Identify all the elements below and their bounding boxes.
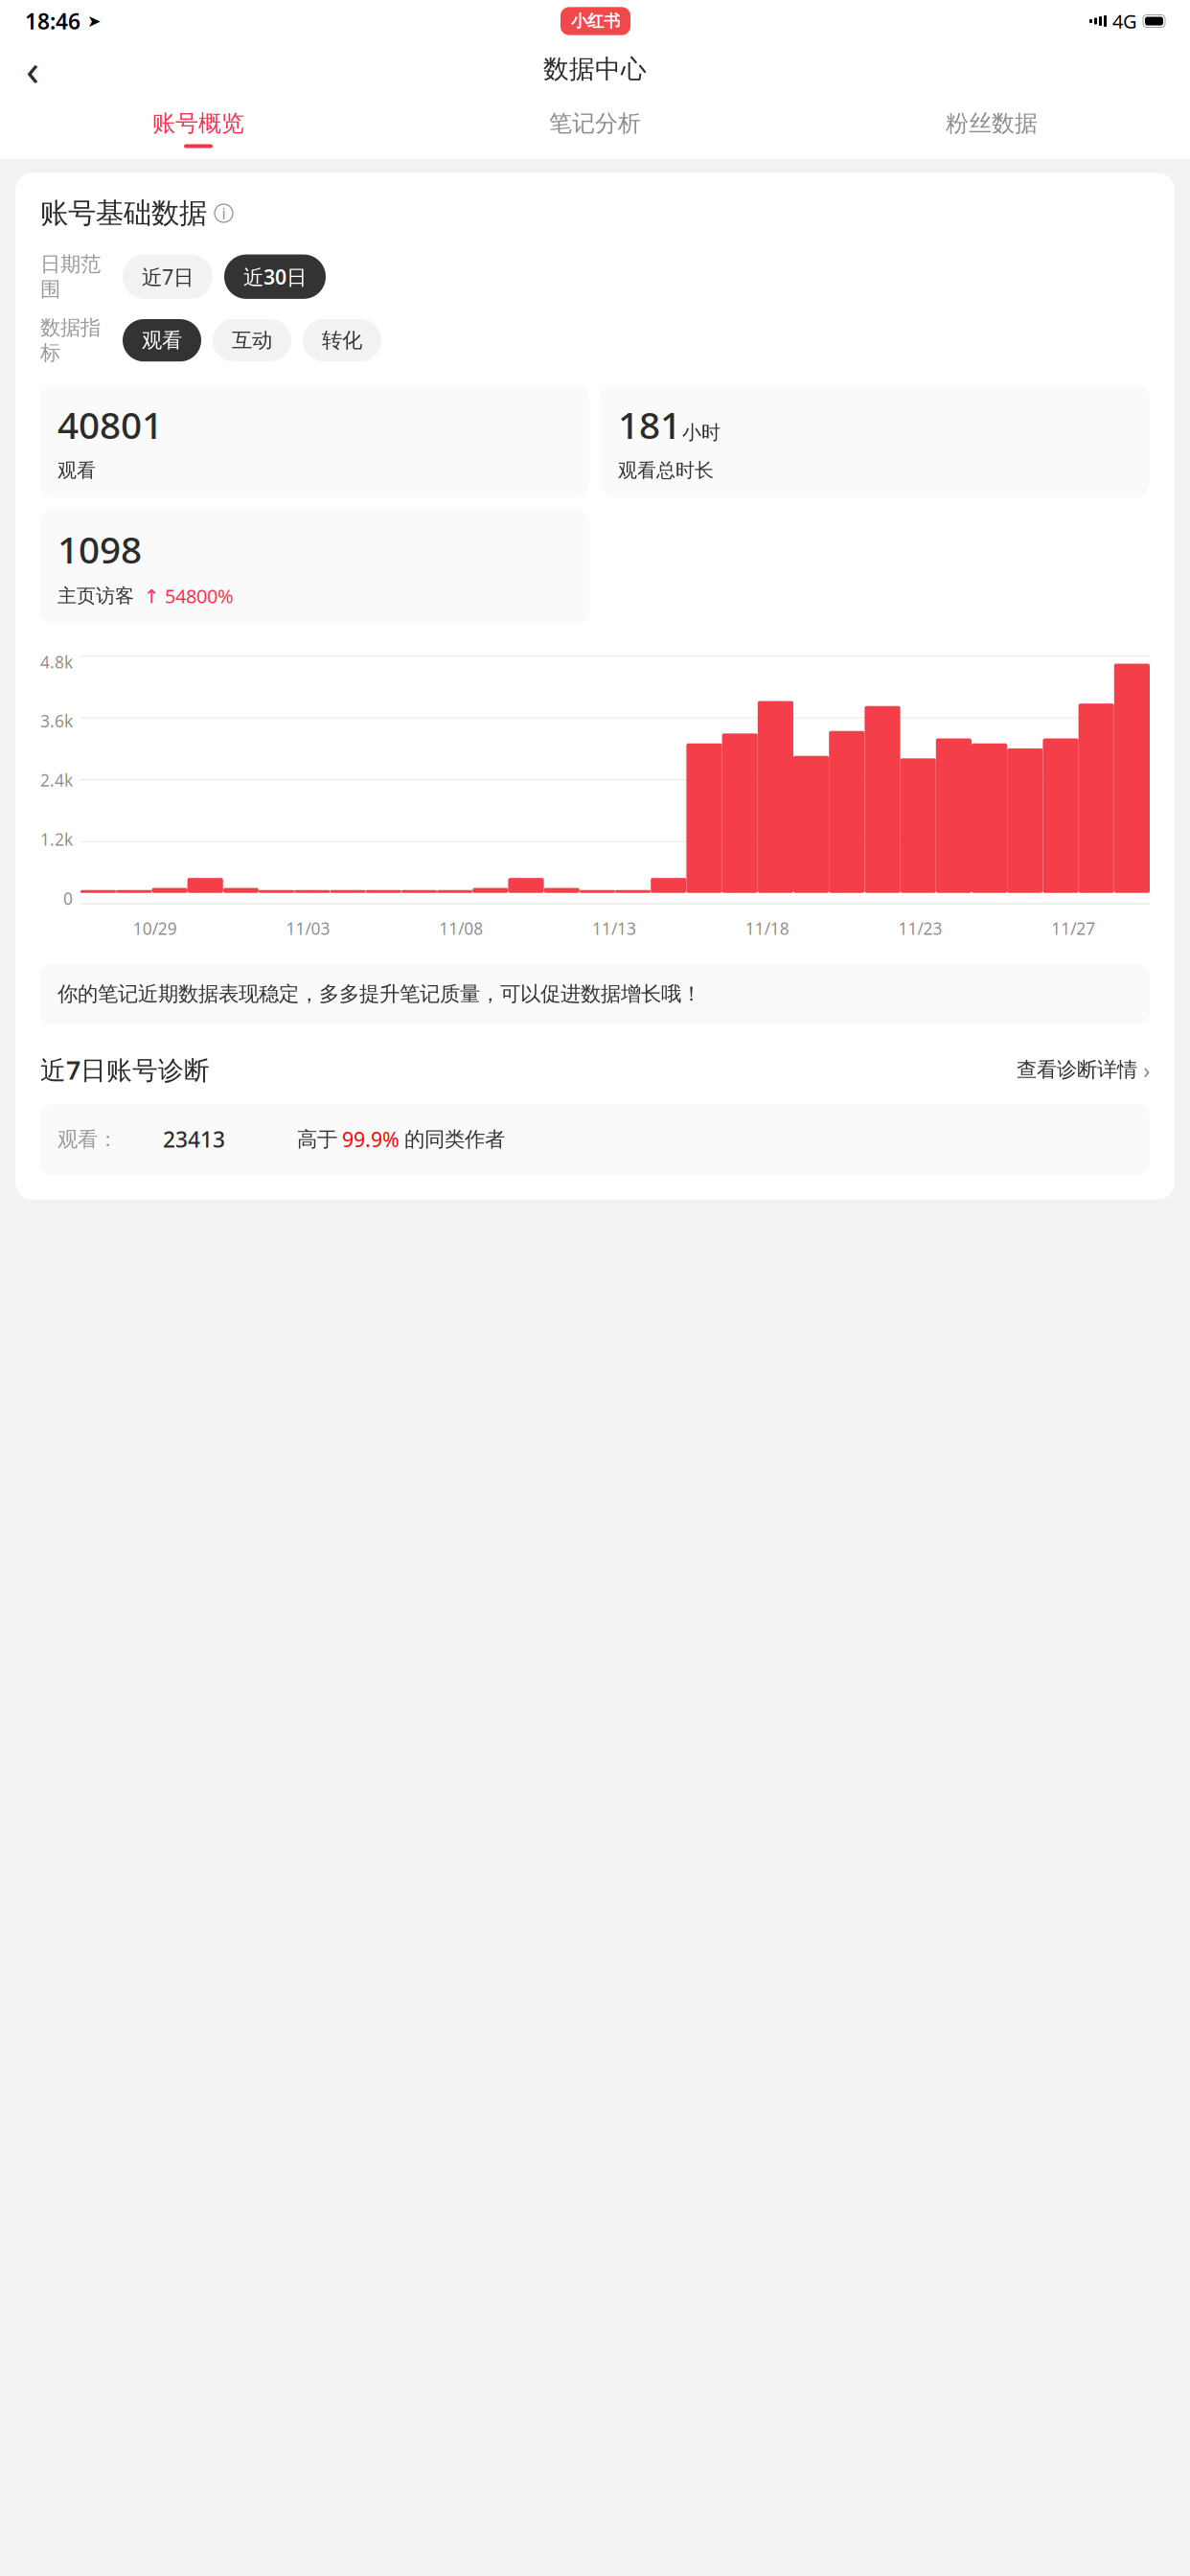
staticText: 观看：	[57, 1127, 118, 1152]
staticText: 11/03	[286, 917, 330, 939]
staticText: 日期范围	[40, 252, 101, 302]
staticText: ›	[1143, 1054, 1150, 1085]
staticText: 11/27	[1051, 917, 1095, 939]
button[interactable]: 近30日	[224, 254, 326, 299]
staticText: 账号概览	[152, 109, 244, 138]
staticText: 互动	[232, 328, 272, 353]
staticText: 10/29	[133, 917, 177, 939]
staticText: 观看	[142, 328, 182, 353]
button[interactable]: Back	[11, 48, 54, 90]
staticText: 1.2k	[40, 828, 73, 850]
staticText: 2.4k	[40, 769, 73, 791]
staticText: 11/23	[898, 917, 942, 939]
staticText: 181	[618, 400, 681, 449]
staticText: 小时	[682, 421, 721, 444]
staticText: 的同类作者	[404, 1127, 505, 1152]
staticText: 查看诊断详情	[1017, 1057, 1137, 1082]
button[interactable]: 粉丝数据	[793, 103, 1190, 154]
staticText: 99.9%	[342, 1126, 400, 1153]
staticText: ‹	[26, 40, 39, 98]
staticText: 1098	[57, 524, 142, 574]
button[interactable]: 互动	[213, 319, 291, 361]
staticText: 数据指标	[40, 315, 101, 365]
staticText: 11/08	[439, 917, 483, 939]
staticText: 近30日	[243, 263, 307, 290]
staticText: 40801	[57, 400, 163, 449]
staticText: ↑ 54800%	[144, 583, 234, 609]
button[interactable]: 观看	[123, 319, 201, 361]
button[interactable]: 近7日	[123, 254, 213, 299]
staticText: 笔记分析	[549, 109, 641, 138]
staticText: 3.6k	[40, 710, 73, 732]
staticText: 0	[63, 888, 73, 910]
staticText: 高于	[297, 1127, 337, 1152]
staticText: 11/18	[745, 917, 789, 939]
staticText: 11/13	[592, 917, 636, 939]
staticText: i	[222, 203, 226, 223]
staticText: 小红书	[571, 11, 620, 31]
staticText: 转化	[322, 328, 362, 353]
staticText: 18:46	[25, 7, 80, 35]
staticText: 观看总时长	[618, 459, 714, 482]
button[interactable]: 笔记分析	[397, 103, 793, 154]
staticText: 4.8k	[40, 651, 73, 673]
staticText: 粉丝数据	[946, 109, 1038, 138]
staticText: 主页访客	[57, 584, 134, 608]
staticText: 23413	[163, 1125, 225, 1154]
button[interactable]: Info	[215, 204, 233, 222]
staticText: 近7日账号诊断	[40, 1053, 210, 1087]
staticText: 账号基础数据	[40, 196, 207, 230]
staticText: 4G	[1112, 8, 1137, 34]
staticText: ➤	[87, 12, 102, 31]
staticText: 观看	[57, 459, 96, 482]
staticText: 你的笔记近期数据表现稳定，多多提升笔记质量，可以促进数据增长哦！	[57, 982, 701, 1007]
staticText: 数据中心	[543, 53, 647, 85]
button[interactable]: 查看诊断详情	[1017, 1054, 1150, 1085]
button[interactable]: 转化	[303, 319, 381, 361]
staticText: 近7日	[142, 263, 194, 290]
button[interactable]: 账号概览	[0, 103, 397, 154]
